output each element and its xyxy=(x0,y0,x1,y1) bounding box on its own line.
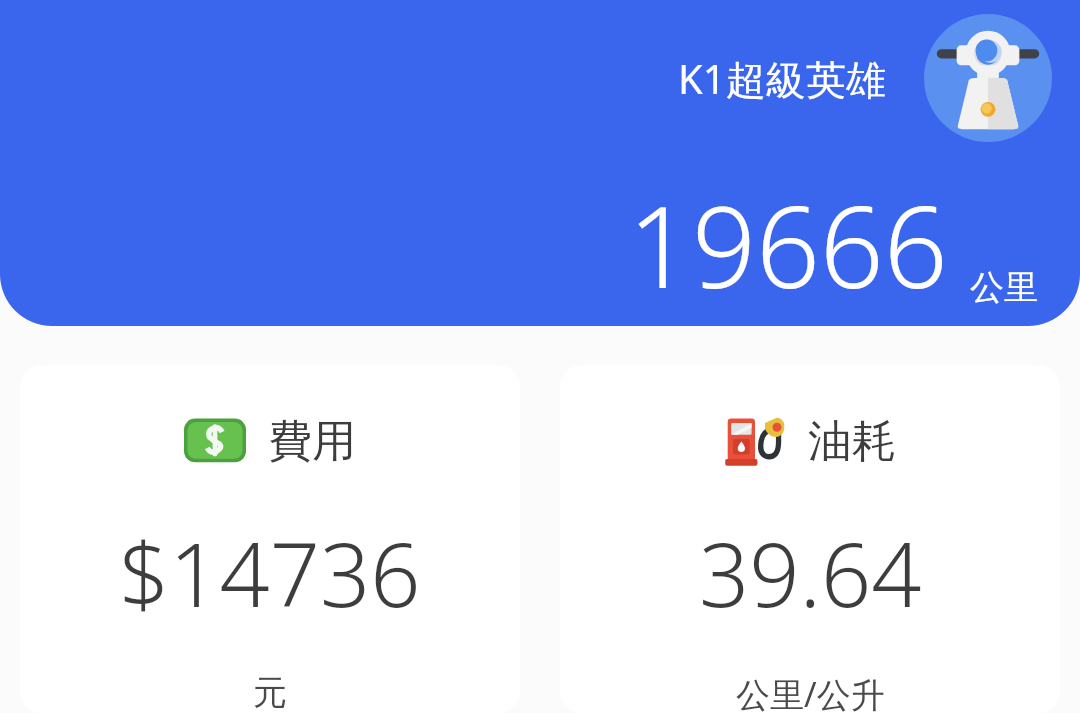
staticText: 費用 xyxy=(268,414,356,469)
other: Cost xyxy=(184,413,246,469)
staticText: 公里/公升 xyxy=(736,671,885,713)
staticText: $14736 xyxy=(119,513,421,633)
staticText: K1超級英雄 xyxy=(678,51,886,106)
button[interactable]: K1超級英雄 xyxy=(0,0,1080,326)
staticText: 39.64 xyxy=(699,513,922,633)
other: Fuel consumption xyxy=(724,413,786,469)
button[interactable]: Fuel consumption xyxy=(560,365,1060,713)
staticText: 公里 xyxy=(970,266,1038,309)
button[interactable]: Vehicle avatar xyxy=(924,14,1052,142)
staticText: 油耗 xyxy=(808,414,896,469)
staticText: 元 xyxy=(253,671,287,713)
button[interactable]: Cost xyxy=(20,365,520,713)
staticText: 19666 xyxy=(628,168,948,321)
